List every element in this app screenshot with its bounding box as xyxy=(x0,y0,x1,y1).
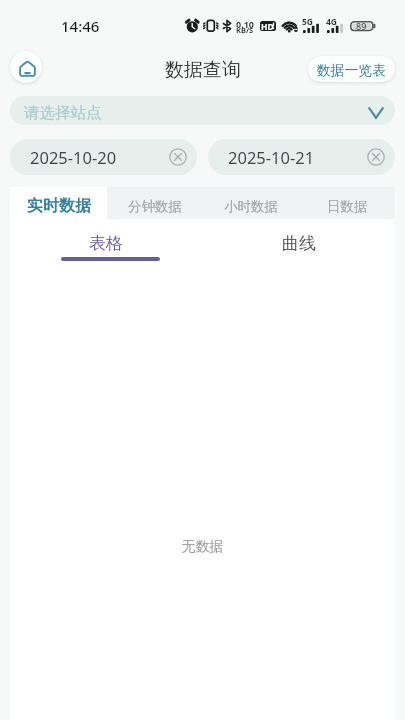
staticText: 4G xyxy=(326,16,338,28)
staticText: 日数据 xyxy=(327,198,368,215)
button[interactable]: 2025-10-21 xyxy=(208,139,395,175)
button[interactable]: 分钟数据 xyxy=(107,187,203,219)
staticText: 无数据 xyxy=(10,538,395,556)
staticText: 2025-10-21 xyxy=(228,146,315,168)
staticText: 14:46 xyxy=(61,16,100,36)
staticText: 小时数据 xyxy=(224,198,278,215)
staticText: 表格 xyxy=(89,233,123,254)
staticText: HD xyxy=(261,21,274,31)
button[interactable]: 数据一览表 xyxy=(308,56,395,82)
button[interactable]: 表格 xyxy=(10,219,202,267)
button[interactable]: 日数据 xyxy=(299,187,395,219)
button[interactable]: Home xyxy=(10,51,42,83)
button[interactable]: 实时数据 xyxy=(10,187,107,219)
staticText: 实时数据 xyxy=(27,196,91,216)
staticText: 5G xyxy=(302,16,314,28)
staticText: 分钟数据 xyxy=(128,198,182,215)
staticText: KB/S xyxy=(236,25,254,35)
staticText: 89 xyxy=(356,20,367,32)
staticText: 0.10 xyxy=(236,18,254,30)
button[interactable]: 曲线 xyxy=(202,219,395,267)
button[interactable]: 小时数据 xyxy=(203,187,299,219)
staticText: 数据一览表 xyxy=(317,62,386,79)
button[interactable]: 2025-10-20 xyxy=(10,139,197,175)
button[interactable]: 请选择站点 xyxy=(10,96,395,125)
staticText: 2025-10-20 xyxy=(30,146,117,168)
staticText: 数据查询 xyxy=(165,58,241,82)
staticText: 请选择站点 xyxy=(24,103,102,123)
staticText: 曲线 xyxy=(282,233,316,254)
